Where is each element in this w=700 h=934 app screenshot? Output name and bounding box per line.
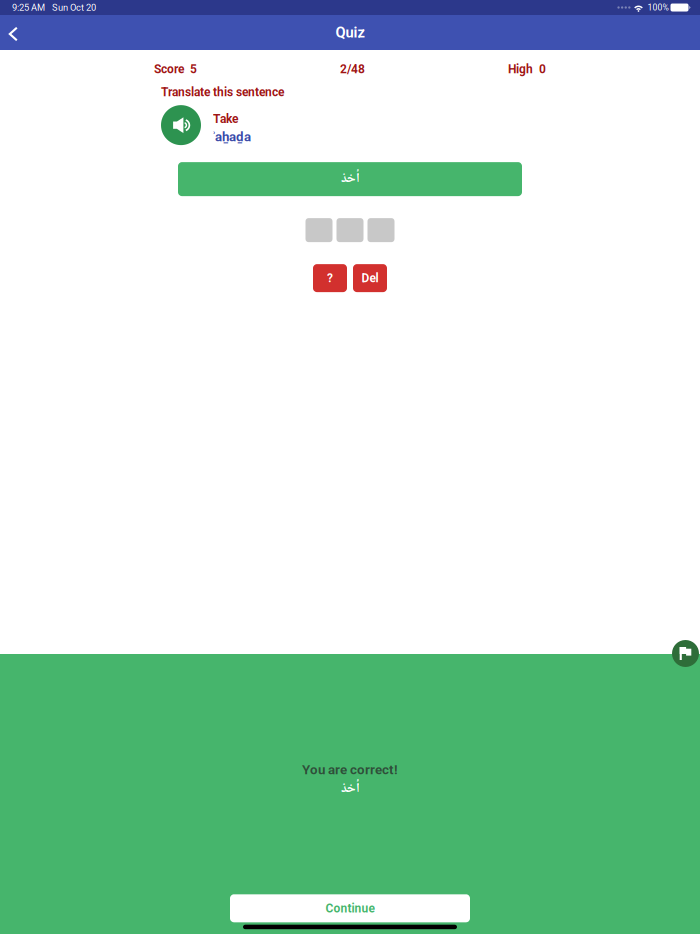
staticText: 100% (647, 2, 668, 13)
button[interactable]: ? (313, 264, 347, 292)
button[interactable]: Del (353, 264, 387, 292)
button[interactable]: Continue (230, 894, 470, 922)
staticText: 9:25 AM (12, 2, 45, 13)
button[interactable]: Report a problem (672, 640, 699, 667)
staticText: ? (327, 271, 333, 285)
staticText: أخذ (340, 168, 359, 190)
staticText: High 0 (508, 62, 546, 76)
button[interactable]: أخذ (178, 162, 522, 196)
staticText: You are correct! (302, 762, 398, 778)
staticText: 2/48 (340, 62, 365, 76)
staticText: Quiz (335, 24, 364, 41)
staticText: Take (213, 112, 238, 126)
staticText: Score 5 (154, 62, 197, 76)
staticText: أخذ (340, 778, 359, 800)
button[interactable]: Play pronunciation (161, 105, 201, 145)
button[interactable]: Back (0, 15, 26, 50)
staticText: Translate this sentence (161, 85, 284, 99)
staticText: Sun Oct 20 (52, 2, 96, 13)
staticText: ʾaẖaḏa (213, 129, 251, 144)
staticText: Continue (325, 901, 374, 915)
staticText: Del (361, 271, 378, 285)
